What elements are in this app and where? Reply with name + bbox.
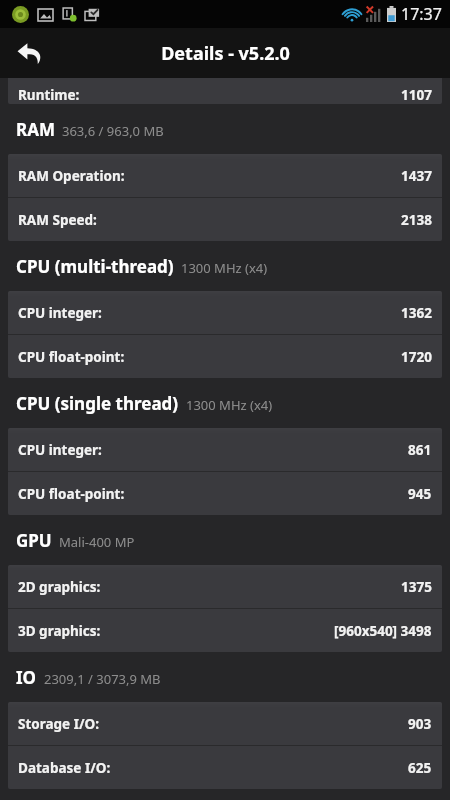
staticText: 1720	[401, 348, 432, 366]
staticText: Runtime:	[18, 86, 80, 104]
staticText: 2309,1 / 3073,9 MB	[44, 670, 161, 688]
button[interactable]: RAM Speed:	[8, 198, 442, 241]
staticText: CPU float-point:	[18, 348, 125, 366]
button[interactable]: 2D graphics:	[8, 565, 442, 608]
staticText: 17:37	[401, 3, 442, 25]
staticText: Details - v5.2.0	[161, 41, 290, 66]
button[interactable]: RAM Operation:	[8, 154, 442, 197]
staticText: Database I/O:	[18, 759, 111, 777]
staticText: 1300 MHz (x4)	[181, 259, 268, 277]
staticText: 2D graphics:	[18, 578, 101, 596]
staticText: RAM	[16, 118, 55, 141]
staticText: CPU (multi-thread)	[16, 255, 174, 278]
staticText: CPU float-point:	[18, 485, 125, 503]
staticText: GPU	[16, 529, 52, 552]
staticText: 3D graphics:	[18, 622, 101, 640]
button[interactable]: CPU integer:	[8, 428, 442, 471]
staticText: 625	[408, 759, 432, 777]
staticText: 1300 MHz (x4)	[186, 396, 273, 414]
staticText: 903	[408, 715, 432, 733]
button[interactable]: Database I/O:	[8, 746, 442, 789]
staticText: CPU (single thread)	[16, 392, 179, 415]
staticText: IO	[16, 666, 37, 689]
staticText: RAM Speed:	[18, 211, 97, 229]
button[interactable]: 3D graphics:	[8, 609, 442, 652]
staticText: RAM Operation:	[18, 167, 125, 185]
button[interactable]: Storage I/O:	[8, 702, 442, 745]
staticText: 1375	[401, 578, 432, 596]
button[interactable]: Runtime:	[8, 78, 442, 104]
button[interactable]: Back	[8, 31, 52, 75]
staticText: CPU integer:	[18, 304, 102, 322]
button[interactable]: CPU float-point:	[8, 335, 442, 378]
staticText: 1362	[401, 304, 432, 322]
staticText: 861	[408, 441, 432, 459]
staticText: Storage I/O:	[18, 715, 100, 733]
staticText: 2138	[401, 211, 432, 229]
button[interactable]: CPU float-point:	[8, 472, 442, 515]
staticText: [960x540] 3498	[334, 622, 432, 640]
button[interactable]: CPU integer:	[8, 291, 442, 334]
staticText: 1437	[401, 167, 432, 185]
staticText: 363,6 / 963,0 MB	[62, 122, 164, 140]
staticText: 1107	[401, 86, 432, 104]
staticText: CPU integer:	[18, 441, 102, 459]
staticText: 945	[408, 485, 432, 503]
staticText: Mali-400 MP	[59, 533, 135, 551]
